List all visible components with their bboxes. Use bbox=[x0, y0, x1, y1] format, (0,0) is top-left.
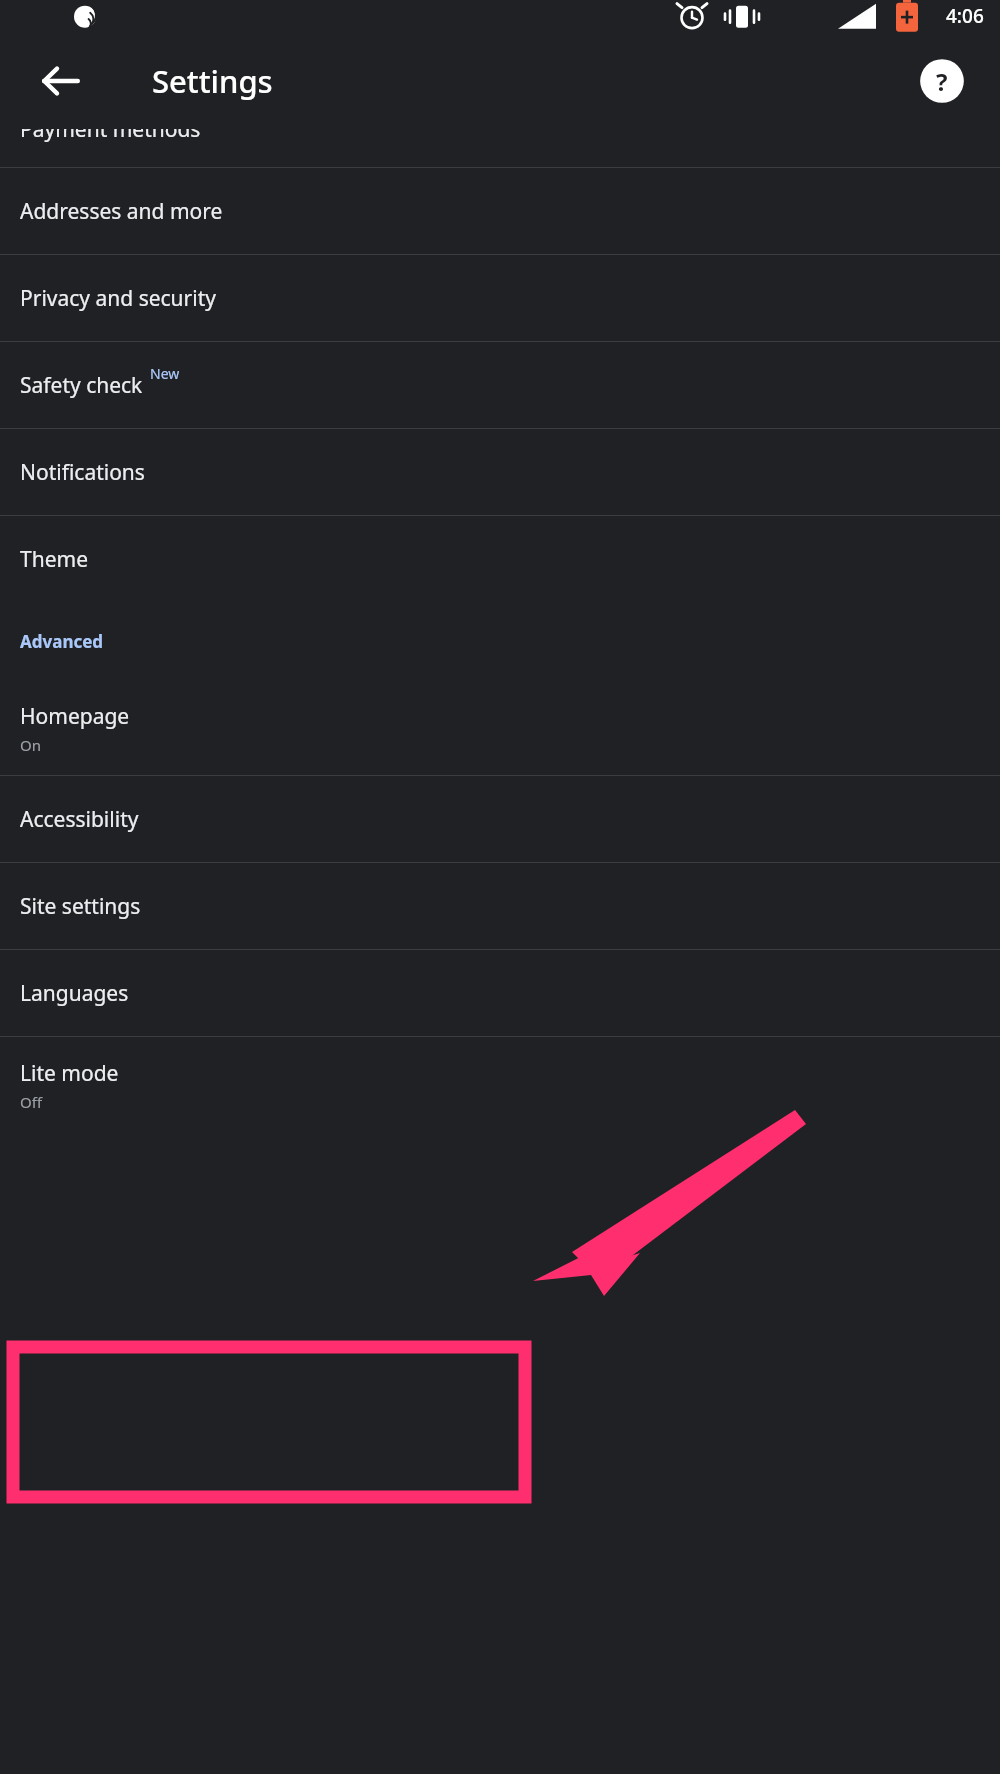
button[interactable]: Safety check bbox=[0, 342, 1000, 428]
staticText: Homepage bbox=[20, 702, 130, 731]
staticText: Safety check bbox=[20, 371, 143, 400]
button[interactable]: Payment methods bbox=[0, 129, 1000, 167]
button[interactable]: Back bbox=[26, 46, 96, 116]
button[interactable]: Privacy and security bbox=[0, 255, 1000, 341]
button[interactable]: Addresses and more bbox=[0, 168, 1000, 254]
button[interactable]: Homepage bbox=[0, 680, 1000, 775]
button[interactable]: Notifications bbox=[0, 429, 1000, 515]
staticText: Languages bbox=[20, 979, 129, 1008]
staticText: Theme bbox=[20, 545, 88, 574]
staticText: Lite mode bbox=[20, 1059, 119, 1088]
button[interactable]: Accessibility bbox=[0, 776, 1000, 862]
staticText: Off bbox=[20, 1092, 43, 1112]
staticText: Privacy and security bbox=[20, 284, 216, 313]
staticText: Advanced bbox=[20, 630, 104, 653]
button[interactable]: Site settings bbox=[0, 863, 1000, 949]
button[interactable]: Languages bbox=[0, 950, 1000, 1036]
staticText: Payment methods bbox=[20, 129, 201, 144]
staticText: On bbox=[20, 735, 41, 755]
staticText: ? bbox=[936, 65, 948, 98]
staticText: Settings bbox=[152, 60, 273, 102]
button[interactable]: Lite mode bbox=[0, 1037, 1000, 1132]
staticText: Site settings bbox=[20, 892, 141, 921]
staticText: 4:06 bbox=[946, 3, 984, 29]
staticText: New bbox=[150, 364, 180, 383]
staticText: Accessibility bbox=[20, 805, 139, 834]
staticText: Addresses and more bbox=[20, 197, 223, 226]
button[interactable]: Theme bbox=[0, 516, 1000, 602]
button[interactable]: Help bbox=[911, 50, 973, 112]
staticText: Notifications bbox=[20, 458, 145, 487]
